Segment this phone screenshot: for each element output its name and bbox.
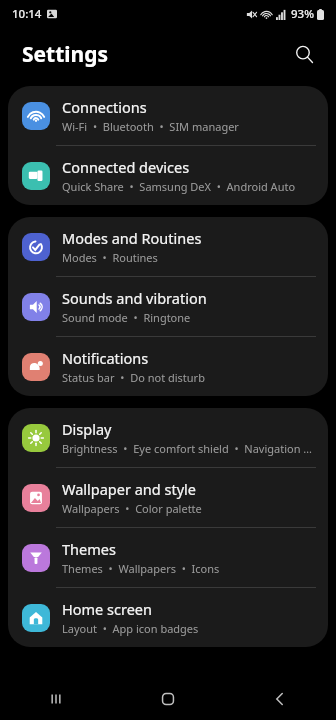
button[interactable]: Back bbox=[224, 678, 336, 720]
staticText: Connections bbox=[62, 97, 147, 117]
staticText: 93% bbox=[291, 6, 314, 22]
button[interactable]: Modes and Routines bbox=[8, 217, 328, 276]
button[interactable]: Sounds and vibration bbox=[8, 277, 328, 336]
button[interactable]: Notifications bbox=[8, 337, 328, 396]
button[interactable]: Display bbox=[8, 408, 328, 467]
staticText: Sounds and vibration bbox=[62, 288, 207, 308]
staticText: Connected devices bbox=[62, 157, 190, 177]
button[interactable]: Home screen bbox=[8, 588, 328, 647]
button[interactable]: Connected devices bbox=[8, 146, 328, 205]
staticText: Themes bbox=[62, 539, 116, 559]
button[interactable]: Connections bbox=[8, 86, 328, 145]
staticText: Display bbox=[62, 419, 112, 439]
staticText: Layout • App icon badges bbox=[62, 621, 199, 636]
staticText: Wallpapers • Color palette bbox=[62, 501, 202, 516]
staticText: Home screen bbox=[62, 599, 152, 619]
staticText: Sound mode • Ringtone bbox=[62, 310, 191, 325]
button[interactable]: Search settings bbox=[286, 36, 322, 72]
staticText: Status bar • Do not disturb bbox=[62, 370, 205, 385]
staticText: Settings bbox=[22, 40, 109, 69]
staticText: Notifications bbox=[62, 348, 149, 368]
staticText: 10:14 bbox=[12, 6, 42, 22]
button[interactable]: Themes bbox=[8, 528, 328, 587]
staticText: Themes • Wallpapers • Icons bbox=[62, 561, 220, 576]
button[interactable]: Recent apps bbox=[0, 678, 112, 720]
staticText: Brightness • Eye comfort shield • Naviga… bbox=[62, 441, 316, 456]
staticText: Wi-Fi • Bluetooth • SIM manager bbox=[62, 119, 239, 134]
staticText: Wallpaper and style bbox=[62, 479, 196, 499]
staticText: Modes and Routines bbox=[62, 228, 202, 248]
button[interactable]: Home bbox=[112, 678, 224, 720]
staticText: Quick Share • Samsung DeX • Android Auto bbox=[62, 179, 296, 194]
staticText: Modes • Routines bbox=[62, 250, 158, 265]
button[interactable]: Wallpaper and style bbox=[8, 468, 328, 527]
